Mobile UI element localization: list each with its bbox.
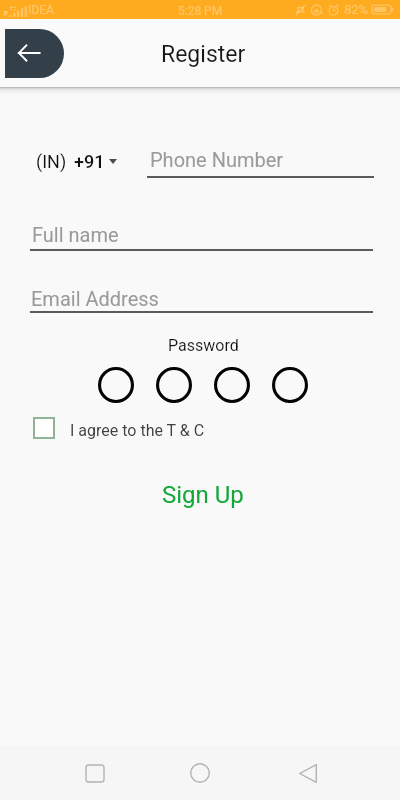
button[interactable]: Password character 4: [272, 367, 308, 403]
staticText: IDEA: [28, 3, 54, 17]
staticText: 82%: [344, 2, 369, 17]
button[interactable]: Password character 2: [156, 367, 192, 403]
button[interactable]: Back: [5, 29, 64, 78]
staticText: I agree to the T & C: [70, 421, 205, 440]
button[interactable]: Recent apps: [43, 746, 147, 800]
staticText: Register: [161, 41, 246, 68]
button[interactable]: Sign Up: [146, 476, 260, 514]
staticText: Email Address: [31, 287, 159, 310]
button[interactable]: Back: [255, 746, 360, 800]
staticText: 5:28 PM: [178, 4, 223, 18]
staticText: +91: [74, 151, 105, 172]
button[interactable]: Password character 1: [98, 367, 134, 403]
button[interactable]: Home: [147, 746, 252, 800]
staticText: (IN): [36, 151, 67, 172]
staticText: Full name: [32, 223, 119, 246]
staticText: Phone Number: [150, 148, 284, 171]
staticText: Sign Up: [162, 481, 244, 509]
button[interactable]: (IN): [30, 147, 123, 176]
staticText: Password: [168, 336, 239, 355]
button[interactable]: I agree to the T & C: [27, 411, 215, 445]
button[interactable]: Password character 3: [214, 367, 250, 403]
